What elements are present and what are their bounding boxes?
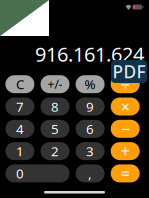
staticText: 8 bbox=[51, 98, 59, 115]
button[interactable]: 3 bbox=[76, 142, 105, 160]
staticText: 6 bbox=[86, 120, 94, 138]
button[interactable]: 6 bbox=[76, 120, 105, 138]
staticText: 5 bbox=[51, 120, 59, 138]
staticText: = bbox=[121, 163, 130, 184]
button[interactable]: % bbox=[76, 75, 105, 93]
button[interactable]: 7 bbox=[5, 97, 34, 115]
button[interactable]: 9 bbox=[76, 97, 105, 115]
button[interactable]: 8 bbox=[40, 97, 69, 115]
staticText: +/- bbox=[47, 76, 62, 92]
button[interactable]: C bbox=[5, 75, 34, 93]
staticText: 7 bbox=[16, 98, 24, 115]
button[interactable]: × bbox=[111, 97, 140, 115]
staticText: 2 bbox=[51, 142, 59, 160]
button[interactable]: − bbox=[111, 120, 140, 138]
button[interactable]: 5 bbox=[40, 120, 69, 138]
staticText: , bbox=[88, 164, 92, 182]
button[interactable]: 1 bbox=[5, 142, 34, 160]
button[interactable]: 4 bbox=[5, 120, 34, 138]
button[interactable]: +/- bbox=[40, 75, 69, 93]
button[interactable]: = bbox=[111, 164, 140, 182]
staticText: 916.161.624 bbox=[35, 41, 144, 67]
staticText: 0 bbox=[16, 164, 24, 182]
staticText: × bbox=[121, 96, 130, 117]
staticText: + bbox=[121, 140, 130, 162]
staticText: C bbox=[16, 75, 24, 93]
staticText: 3 bbox=[86, 142, 94, 160]
staticText: PDF bbox=[112, 60, 145, 83]
staticText: − bbox=[121, 118, 130, 139]
staticText: ÷ bbox=[121, 74, 130, 95]
button[interactable]: , bbox=[76, 164, 105, 182]
button[interactable]: 2 bbox=[40, 142, 69, 160]
staticText: % bbox=[85, 75, 96, 93]
staticText: 4 bbox=[16, 120, 24, 138]
button[interactable]: 0 bbox=[5, 164, 69, 182]
staticText: 1 bbox=[16, 142, 24, 160]
button[interactable]: + bbox=[111, 142, 140, 160]
staticText: 9 bbox=[86, 98, 94, 115]
button[interactable]: ÷ bbox=[111, 75, 140, 93]
